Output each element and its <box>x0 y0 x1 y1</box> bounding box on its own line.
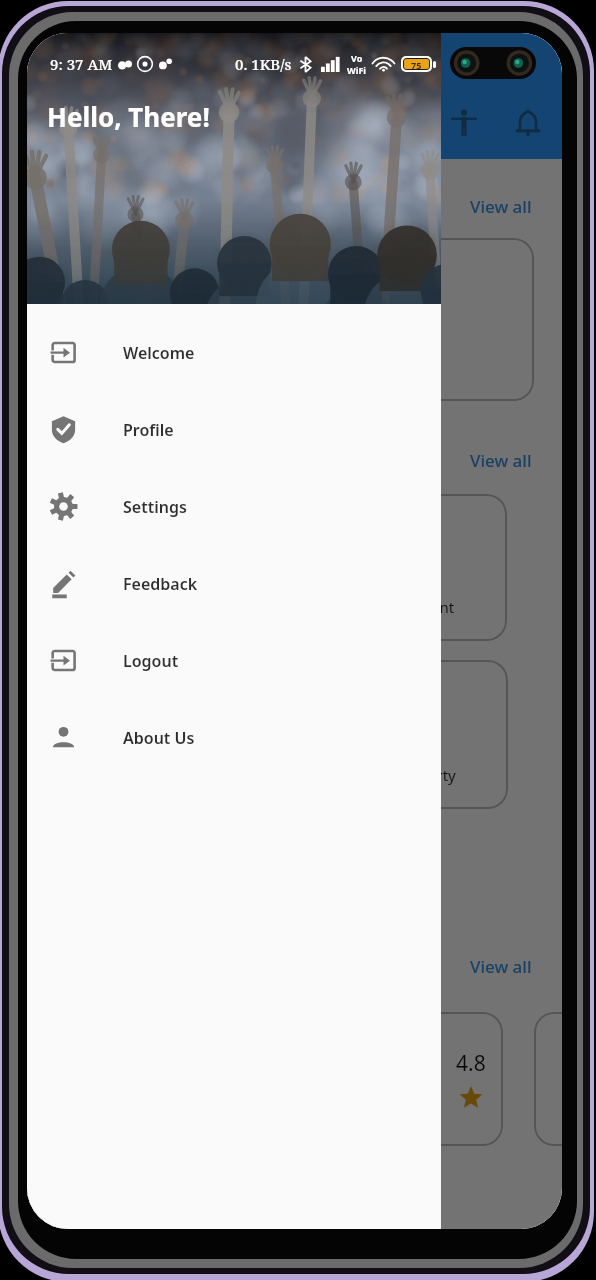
button[interactable] <box>534 1012 562 1146</box>
staticText: WiFi <box>347 64 367 76</box>
button[interactable]: Notifications <box>504 99 552 147</box>
button[interactable]: House Party <box>43 660 508 809</box>
staticText: 9: 37 AM <box>50 54 113 74</box>
button[interactable]: About Us <box>27 699 441 776</box>
button[interactable]: View all <box>466 949 534 984</box>
button[interactable]: Feedback <box>27 545 441 622</box>
staticText: View all <box>470 449 532 472</box>
button[interactable]: Settings <box>27 468 441 545</box>
button[interactable] <box>43 238 534 401</box>
staticText: View all <box>470 955 532 978</box>
staticText: 0. 1KB/s <box>235 54 292 74</box>
staticText: Engagement <box>364 597 455 617</box>
staticText: 75 <box>411 59 422 69</box>
button[interactable]: Logout <box>27 622 441 699</box>
button[interactable]: Accessibility <box>440 99 488 147</box>
staticText: Feedback <box>123 573 198 595</box>
button[interactable]: Close navigation drawer <box>27 33 562 1229</box>
button[interactable]: View all <box>466 443 534 478</box>
button[interactable]: View all <box>466 189 534 224</box>
staticText: Logout <box>123 650 179 672</box>
staticText: Welcome <box>123 342 195 364</box>
staticText: Profile <box>123 419 174 441</box>
button[interactable]: Welcome <box>27 314 441 391</box>
button[interactable]: Engagement <box>43 494 507 641</box>
staticText: Categories <box>43 193 146 219</box>
staticText: Vo <box>351 52 363 64</box>
staticText: View all <box>470 195 532 218</box>
staticText: House Party <box>370 765 456 785</box>
button[interactable]: 4.8 <box>43 1012 503 1146</box>
staticText: 4.8 <box>456 1049 486 1078</box>
staticText: Settings <box>123 496 187 518</box>
staticText: About Us <box>123 727 195 749</box>
staticText: Hello, There! <box>47 99 210 134</box>
button[interactable]: Profile <box>27 391 441 468</box>
